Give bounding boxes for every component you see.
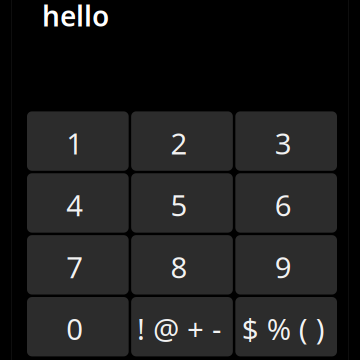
- staticText: 9: [275, 247, 292, 286]
- staticText: 8: [170, 247, 187, 286]
- button[interactable]: 0: [27, 297, 129, 356]
- button[interactable]: 2: [131, 111, 233, 171]
- button[interactable]: 5: [131, 173, 233, 233]
- staticText: 1: [66, 124, 83, 163]
- button[interactable]: ! @ + -: [131, 297, 233, 356]
- staticText: 0: [66, 309, 83, 348]
- button[interactable]: 4: [27, 173, 129, 233]
- button[interactable]: 9: [235, 235, 337, 294]
- button[interactable]: 7: [27, 235, 129, 294]
- staticText: 7: [66, 247, 83, 286]
- staticText: $ % ( ): [242, 309, 325, 348]
- staticText: 2: [170, 124, 187, 163]
- staticText: 4: [66, 185, 83, 224]
- staticText: 6: [275, 185, 292, 224]
- button[interactable]: 3: [235, 111, 337, 171]
- staticText: 5: [170, 185, 187, 224]
- staticText: ! @ + -: [137, 309, 221, 348]
- button[interactable]: 1: [27, 111, 129, 171]
- button[interactable]: 8: [131, 235, 233, 294]
- staticText: 3: [275, 124, 292, 163]
- staticText: hello: [42, 0, 109, 34]
- button[interactable]: $ % ( ): [235, 297, 337, 356]
- button[interactable]: 6: [235, 173, 337, 233]
